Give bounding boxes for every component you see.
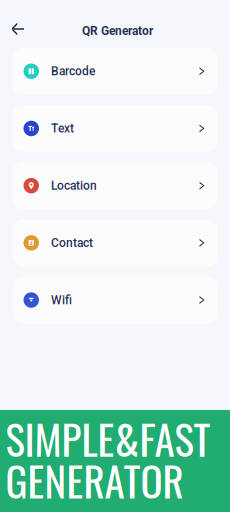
staticText: Wifi (51, 293, 72, 307)
button[interactable]: Location (13, 162, 217, 209)
button[interactable]: Text (13, 105, 217, 152)
staticText: Location (51, 179, 97, 193)
button[interactable]: Contact (13, 220, 217, 266)
staticText: QR Generator (82, 24, 153, 38)
button[interactable]: Wifi (13, 277, 217, 323)
staticText: Contact (51, 236, 93, 250)
staticText: SIMPLE&FAST (6, 408, 211, 468)
staticText: Barcode (51, 64, 95, 78)
button[interactable]: Barcode (13, 48, 217, 94)
staticText: Text (51, 121, 74, 135)
staticText: GENERATOR (6, 449, 184, 510)
button[interactable]: Back (0, 15, 34, 45)
